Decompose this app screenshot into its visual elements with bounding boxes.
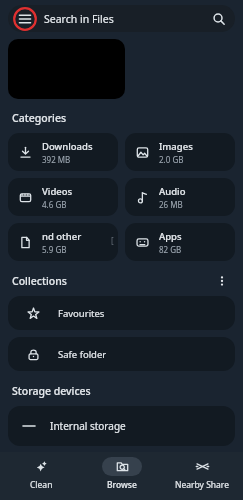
- button[interactable]: More options: [213, 273, 231, 289]
- staticText: Internal storage: [50, 419, 126, 433]
- staticText: Categories: [12, 111, 67, 125]
- staticText: nd other: [42, 230, 82, 243]
- button[interactable]: Safe folder: [8, 337, 235, 371]
- staticText: Images: [159, 140, 193, 153]
- button[interactable]: Internal storage: [8, 406, 235, 446]
- staticText: Collections: [12, 274, 67, 288]
- staticText: Search in Files: [44, 12, 114, 26]
- button[interactable]: Open navigation menu: [8, 5, 235, 32]
- staticText: 2.0 GB: [159, 154, 184, 165]
- staticText: 392 MB: [42, 154, 71, 165]
- button[interactable]: Browse: [83, 457, 161, 491]
- staticText: 4.6 GB: [42, 199, 67, 210]
- button[interactable]: Audio: [125, 178, 235, 216]
- staticText: [: [111, 235, 114, 246]
- staticText: Apps: [159, 230, 182, 243]
- button[interactable]: Downloads: [8, 133, 118, 171]
- button[interactable]: Clean: [2, 457, 80, 491]
- staticText: 82 GB: [159, 244, 182, 255]
- staticText: 26 MB: [159, 199, 183, 210]
- staticText: Safe folder: [58, 348, 107, 361]
- staticText: Browse: [107, 479, 137, 491]
- button[interactable]: Nearby Share: [163, 457, 241, 491]
- button[interactable]: Images: [125, 133, 235, 171]
- button[interactable]: Videos: [8, 178, 118, 216]
- button[interactable]: nd other: [8, 223, 118, 261]
- button[interactable]: [8, 39, 125, 99]
- button[interactable]: Open navigation menu: [13, 7, 37, 31]
- staticText: Audio: [159, 185, 186, 198]
- button[interactable]: Favourites: [8, 296, 235, 330]
- staticText: Favourites: [58, 307, 105, 320]
- button[interactable]: Apps: [125, 223, 235, 261]
- staticText: Clean: [30, 479, 53, 491]
- staticText: Storage devices: [12, 384, 91, 398]
- staticText: 5.9 GB: [42, 244, 67, 255]
- staticText: Downloads: [42, 140, 93, 153]
- staticText: Videos: [42, 185, 73, 198]
- button[interactable]: Search: [209, 9, 229, 29]
- staticText: Nearby Share: [175, 479, 229, 491]
